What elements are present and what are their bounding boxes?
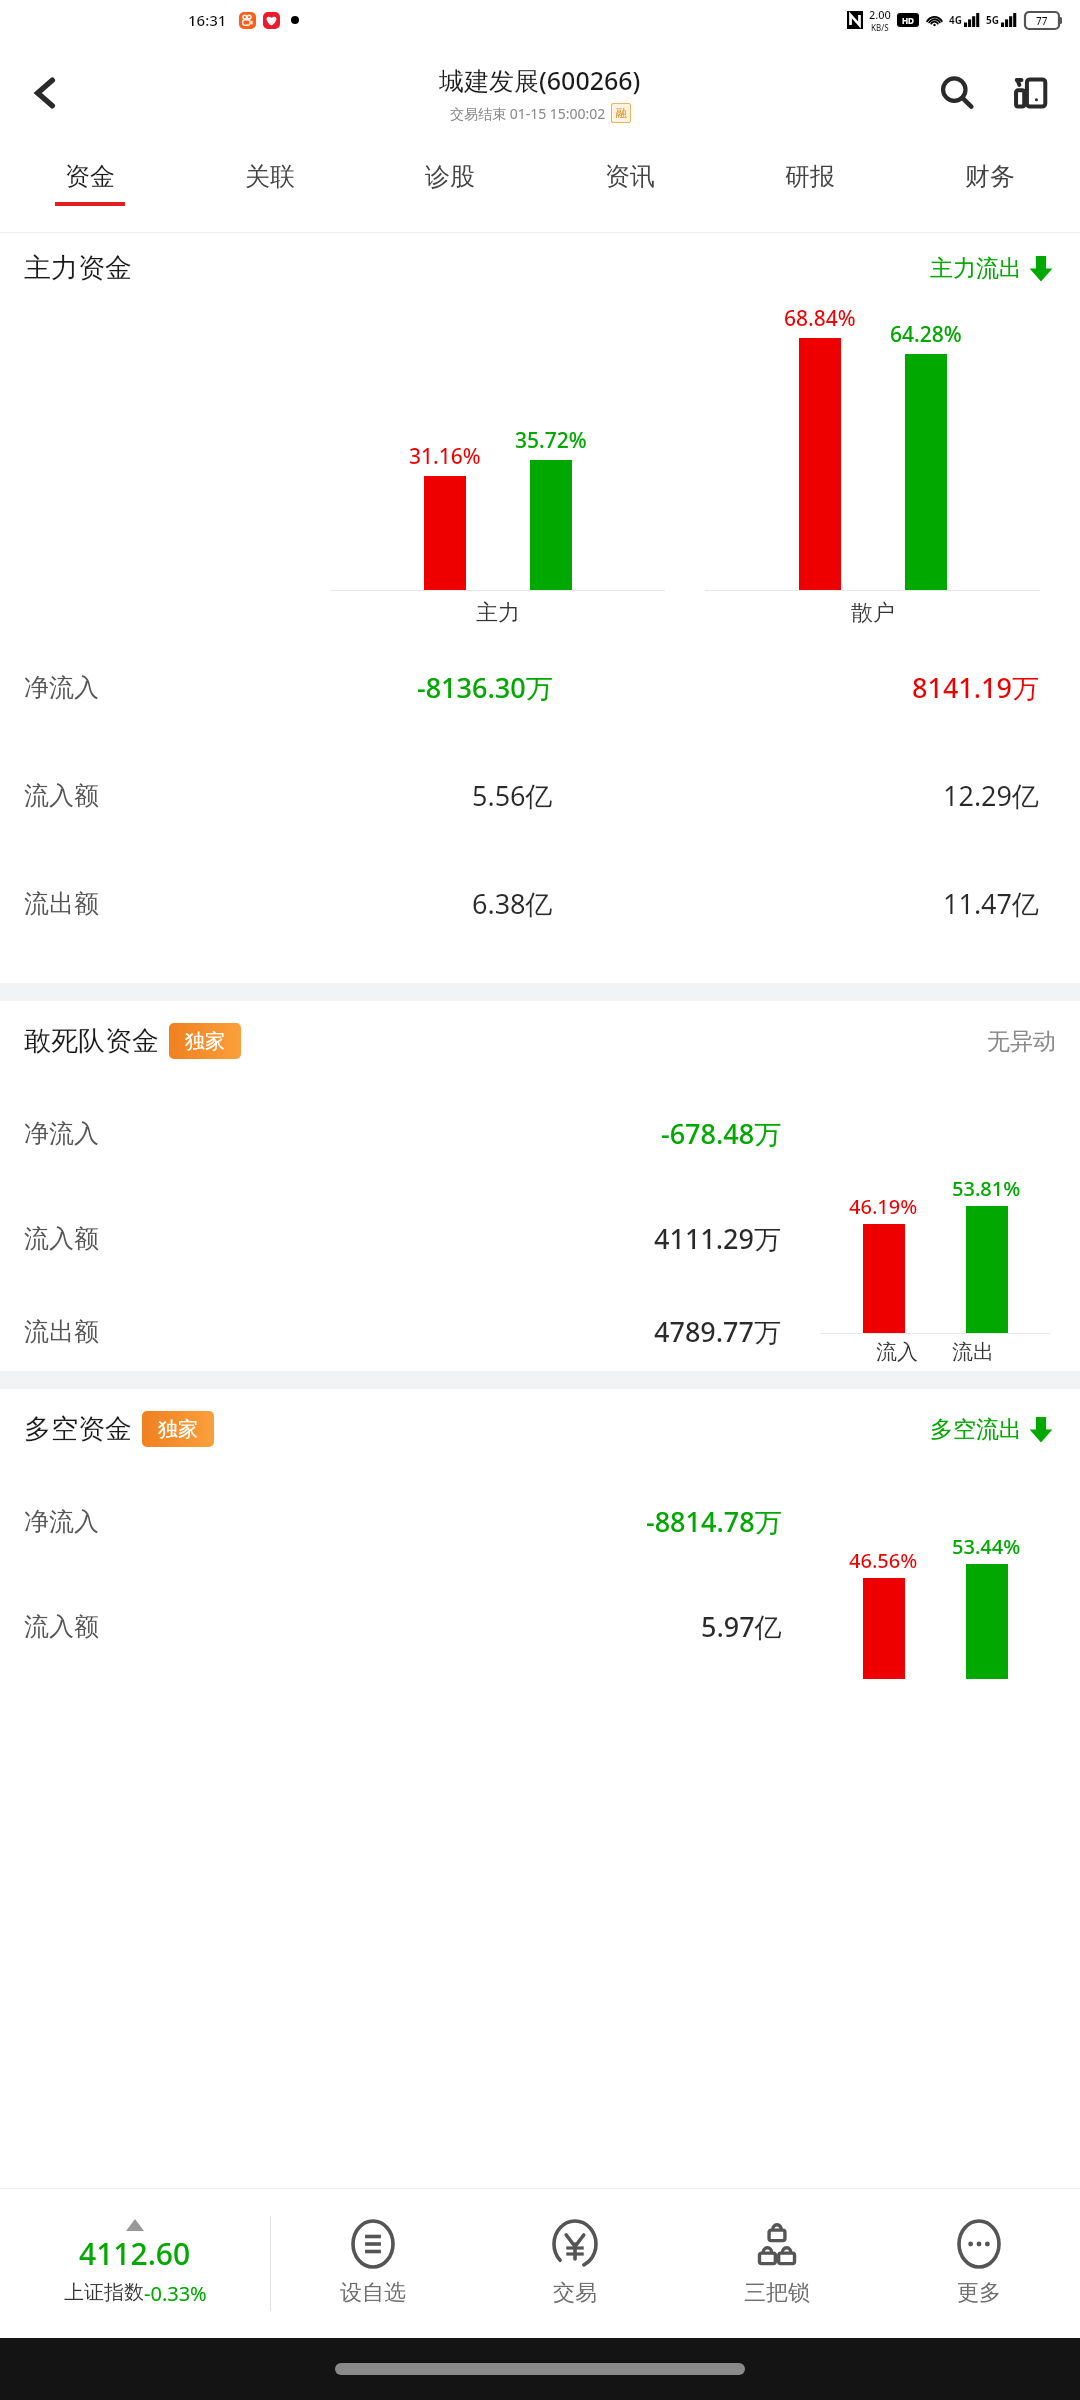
staticText: 6.38亿	[472, 885, 553, 922]
button[interactable]: Layout	[1000, 62, 1062, 124]
button[interactable]: Back	[10, 58, 80, 128]
button[interactable]: 主力流出	[930, 253, 1056, 283]
staticText: 46.56%	[849, 1547, 918, 1574]
staticText: 关联	[245, 161, 295, 192]
staticText: -678.48万	[661, 1115, 782, 1152]
staticText: 流出额	[24, 1316, 99, 1347]
button[interactable]: 4112.60	[0, 2188, 270, 2338]
staticText: HD	[902, 15, 914, 26]
staticText: 更多	[957, 2279, 1001, 2307]
staticText: 8141.19万	[912, 669, 1040, 706]
staticText: 流入	[876, 1339, 918, 1365]
staticText: 12.29亿	[943, 777, 1040, 814]
staticText: 研报	[785, 161, 835, 192]
button[interactable]: 关联	[180, 145, 360, 233]
staticText: 31.16%	[409, 442, 481, 471]
staticText: 多空流出	[930, 1415, 1022, 1444]
staticText: 三把锁	[744, 2279, 810, 2307]
staticText: 4111.29万	[654, 1220, 782, 1257]
staticText: 设自选	[340, 2279, 406, 2307]
staticText: 诊股	[425, 161, 475, 192]
button[interactable]: Search	[926, 62, 988, 124]
staticText: 4789.77万	[654, 1313, 782, 1350]
staticText: 资讯	[605, 161, 655, 192]
staticText: 77	[1036, 14, 1048, 28]
staticText: 主力流出	[930, 254, 1022, 283]
staticText: 5G	[986, 13, 999, 27]
staticText: 资金	[65, 161, 115, 192]
staticText: 68.84%	[784, 304, 856, 333]
staticText: 敢死队资金	[24, 1024, 159, 1058]
staticText: -8814.78万	[646, 1503, 782, 1540]
staticText: 上证指数	[64, 2280, 144, 2305]
button[interactable]: 多空流出	[930, 1414, 1056, 1444]
button[interactable]: 三把锁	[676, 2188, 878, 2338]
button[interactable]: 更多	[878, 2188, 1080, 2338]
button[interactable]: 设自选	[271, 2188, 474, 2338]
button[interactable]: 诊股	[360, 145, 540, 233]
staticText: 多空资金	[24, 1412, 132, 1446]
staticText: 16:31	[188, 10, 227, 30]
staticText: 53.81%	[952, 1175, 1021, 1202]
staticText: 4G	[949, 13, 962, 27]
staticText: 无异动	[987, 1027, 1056, 1056]
staticText: 2.00	[869, 7, 891, 22]
staticText: 流入额	[24, 780, 99, 811]
button[interactable]: 资金	[0, 145, 180, 233]
staticText: 交易结束 01-15 15:00:02	[450, 104, 606, 123]
staticText: 流出	[952, 1339, 994, 1365]
staticText: 5.97亿	[701, 1608, 782, 1645]
staticText: 散户	[851, 599, 895, 627]
staticText: 主力资金	[24, 251, 132, 285]
button[interactable]: 交易	[474, 2188, 676, 2338]
staticText: KB/S	[871, 22, 889, 33]
staticText: 净流入	[24, 1118, 99, 1149]
staticText: 流入额	[24, 1223, 99, 1254]
staticText: 财务	[965, 161, 1015, 192]
button[interactable]: 财务	[900, 145, 1080, 233]
staticText: 净流入	[24, 1506, 99, 1537]
staticText: 5.56亿	[472, 777, 553, 814]
staticText: 11.47亿	[943, 885, 1040, 922]
staticText: 净流入	[24, 672, 99, 703]
staticText: 53.44%	[952, 1533, 1021, 1560]
staticText: 主力	[476, 599, 520, 627]
button[interactable]: 资讯	[540, 145, 720, 233]
staticText: 流入额	[24, 1611, 99, 1642]
button[interactable]: 研报	[720, 145, 900, 233]
staticText: 64.28%	[890, 320, 962, 349]
staticText: 46.19%	[849, 1193, 918, 1220]
staticText: 城建发展(600266)	[439, 63, 641, 97]
staticText: 4112.60	[79, 2233, 191, 2274]
staticText: -8136.30万	[417, 669, 553, 706]
staticText: -0.33%	[144, 2280, 207, 2307]
staticText: 融	[616, 106, 627, 120]
staticText: 35.72%	[515, 426, 587, 455]
staticText: 独家	[158, 1417, 198, 1442]
staticText: 交易	[553, 2279, 597, 2307]
staticText: 独家	[185, 1029, 225, 1054]
staticText: 流出额	[24, 888, 99, 919]
